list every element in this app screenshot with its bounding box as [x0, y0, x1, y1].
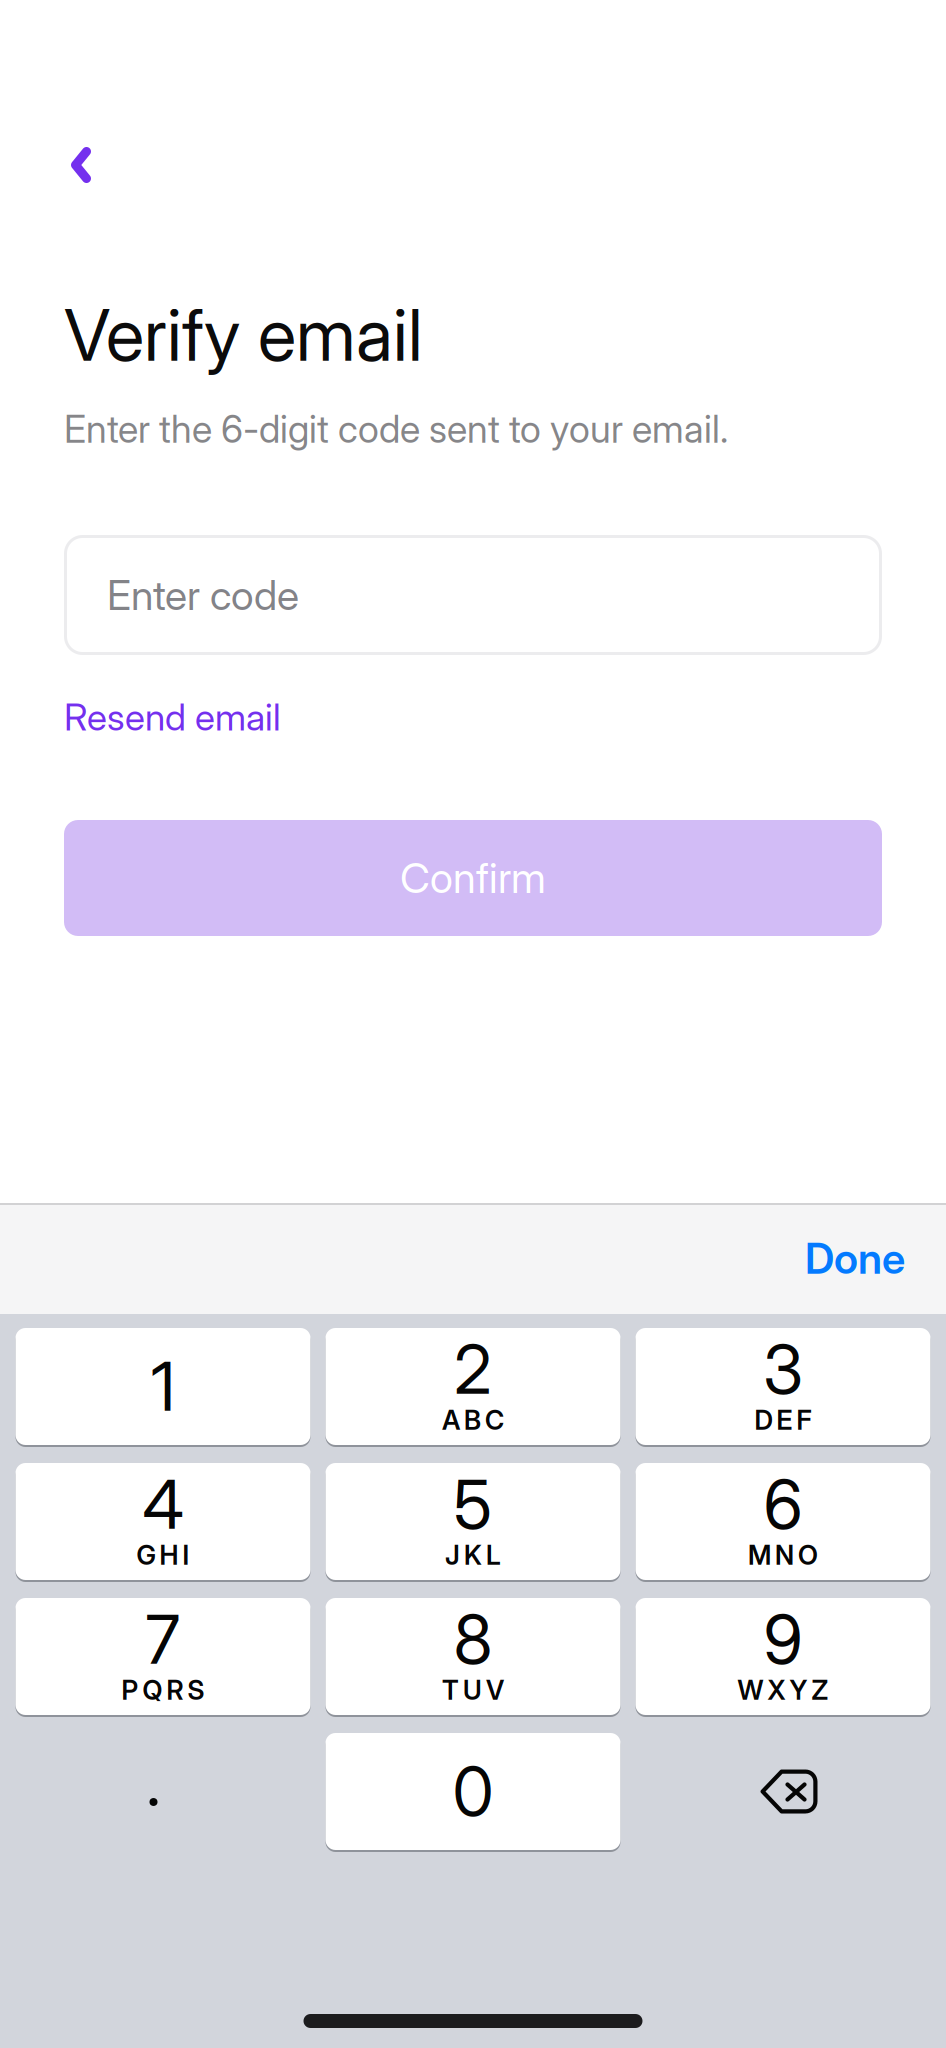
- staticText: W X Y Z: [737, 1674, 828, 1706]
- staticText: 4: [142, 1464, 183, 1545]
- staticText: 2: [454, 1329, 492, 1410]
- button[interactable]: 7: [15, 1598, 310, 1715]
- staticText: Done: [805, 1233, 905, 1284]
- staticText: 3: [763, 1329, 803, 1410]
- staticText: P Q R S: [121, 1674, 204, 1706]
- staticText: 5: [453, 1464, 492, 1545]
- button[interactable]: 5: [325, 1463, 620, 1580]
- button[interactable]: 8: [325, 1598, 620, 1715]
- staticText: 0: [452, 1751, 493, 1832]
- staticText: 9: [763, 1599, 802, 1680]
- staticText: Confirm: [400, 853, 546, 903]
- staticText: 8: [453, 1599, 492, 1680]
- button[interactable]: 1: [15, 1328, 310, 1445]
- staticText: G H I: [136, 1539, 189, 1571]
- staticText: 6: [763, 1464, 802, 1545]
- staticText: 1: [151, 1346, 175, 1427]
- staticText: Enter code: [107, 570, 299, 620]
- button[interactable]: Resend email: [0, 701, 281, 733]
- button[interactable]: 3: [635, 1328, 930, 1445]
- button[interactable]: 6: [635, 1463, 930, 1580]
- button[interactable]: Done: [805, 1203, 946, 1314]
- button[interactable]: 4: [15, 1463, 310, 1580]
- staticText: A B C: [442, 1404, 504, 1436]
- button[interactable]: 9: [635, 1598, 930, 1715]
- staticText: M N O: [748, 1539, 818, 1571]
- staticText: 7: [145, 1599, 180, 1680]
- staticText: T U V: [442, 1674, 504, 1706]
- button[interactable]: Confirm: [0, 820, 882, 936]
- button[interactable]: Delete: [635, 1733, 930, 1850]
- staticText: D E F: [754, 1404, 811, 1436]
- staticText: Verify email: [64, 292, 423, 378]
- button[interactable]: 2: [325, 1328, 620, 1445]
- staticText: Resend email: [64, 695, 281, 739]
- button[interactable]: 0: [325, 1733, 620, 1850]
- staticText: Enter the 6-digit code sent to your emai…: [64, 406, 728, 452]
- staticText: J K L: [445, 1539, 501, 1571]
- button[interactable]: Back: [0, 149, 163, 189]
